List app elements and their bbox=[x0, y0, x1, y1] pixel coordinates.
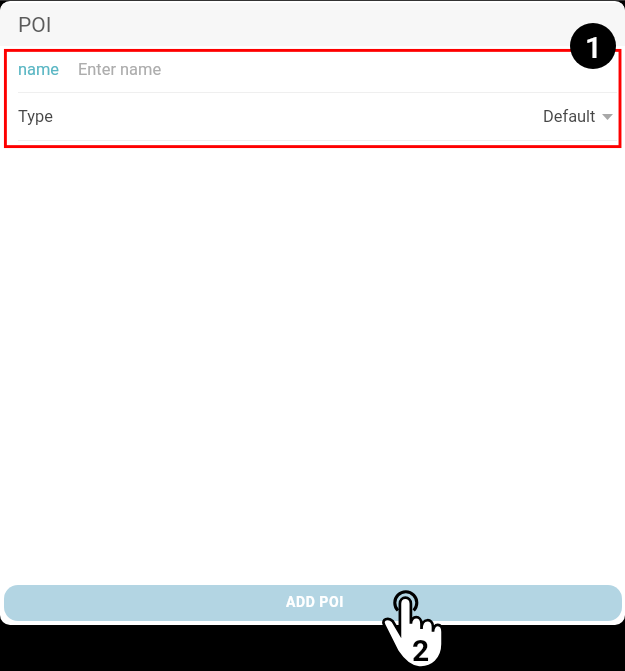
button[interactable]: name bbox=[0, 46, 625, 92]
staticText: Type bbox=[18, 107, 53, 126]
staticText: 1 bbox=[585, 30, 603, 65]
staticText: Enter name bbox=[78, 60, 162, 79]
staticText: POI bbox=[18, 13, 52, 38]
staticText: 2 bbox=[412, 633, 430, 668]
staticText: ADD POI bbox=[286, 594, 344, 610]
other: Step 1 bbox=[570, 23, 616, 69]
button[interactable]: Type bbox=[0, 93, 625, 140]
button[interactable]: ADD POI bbox=[4, 585, 622, 621]
staticText: name bbox=[18, 60, 60, 79]
other: Step 2 tap bbox=[381, 589, 445, 668]
staticText: Default bbox=[543, 107, 596, 126]
